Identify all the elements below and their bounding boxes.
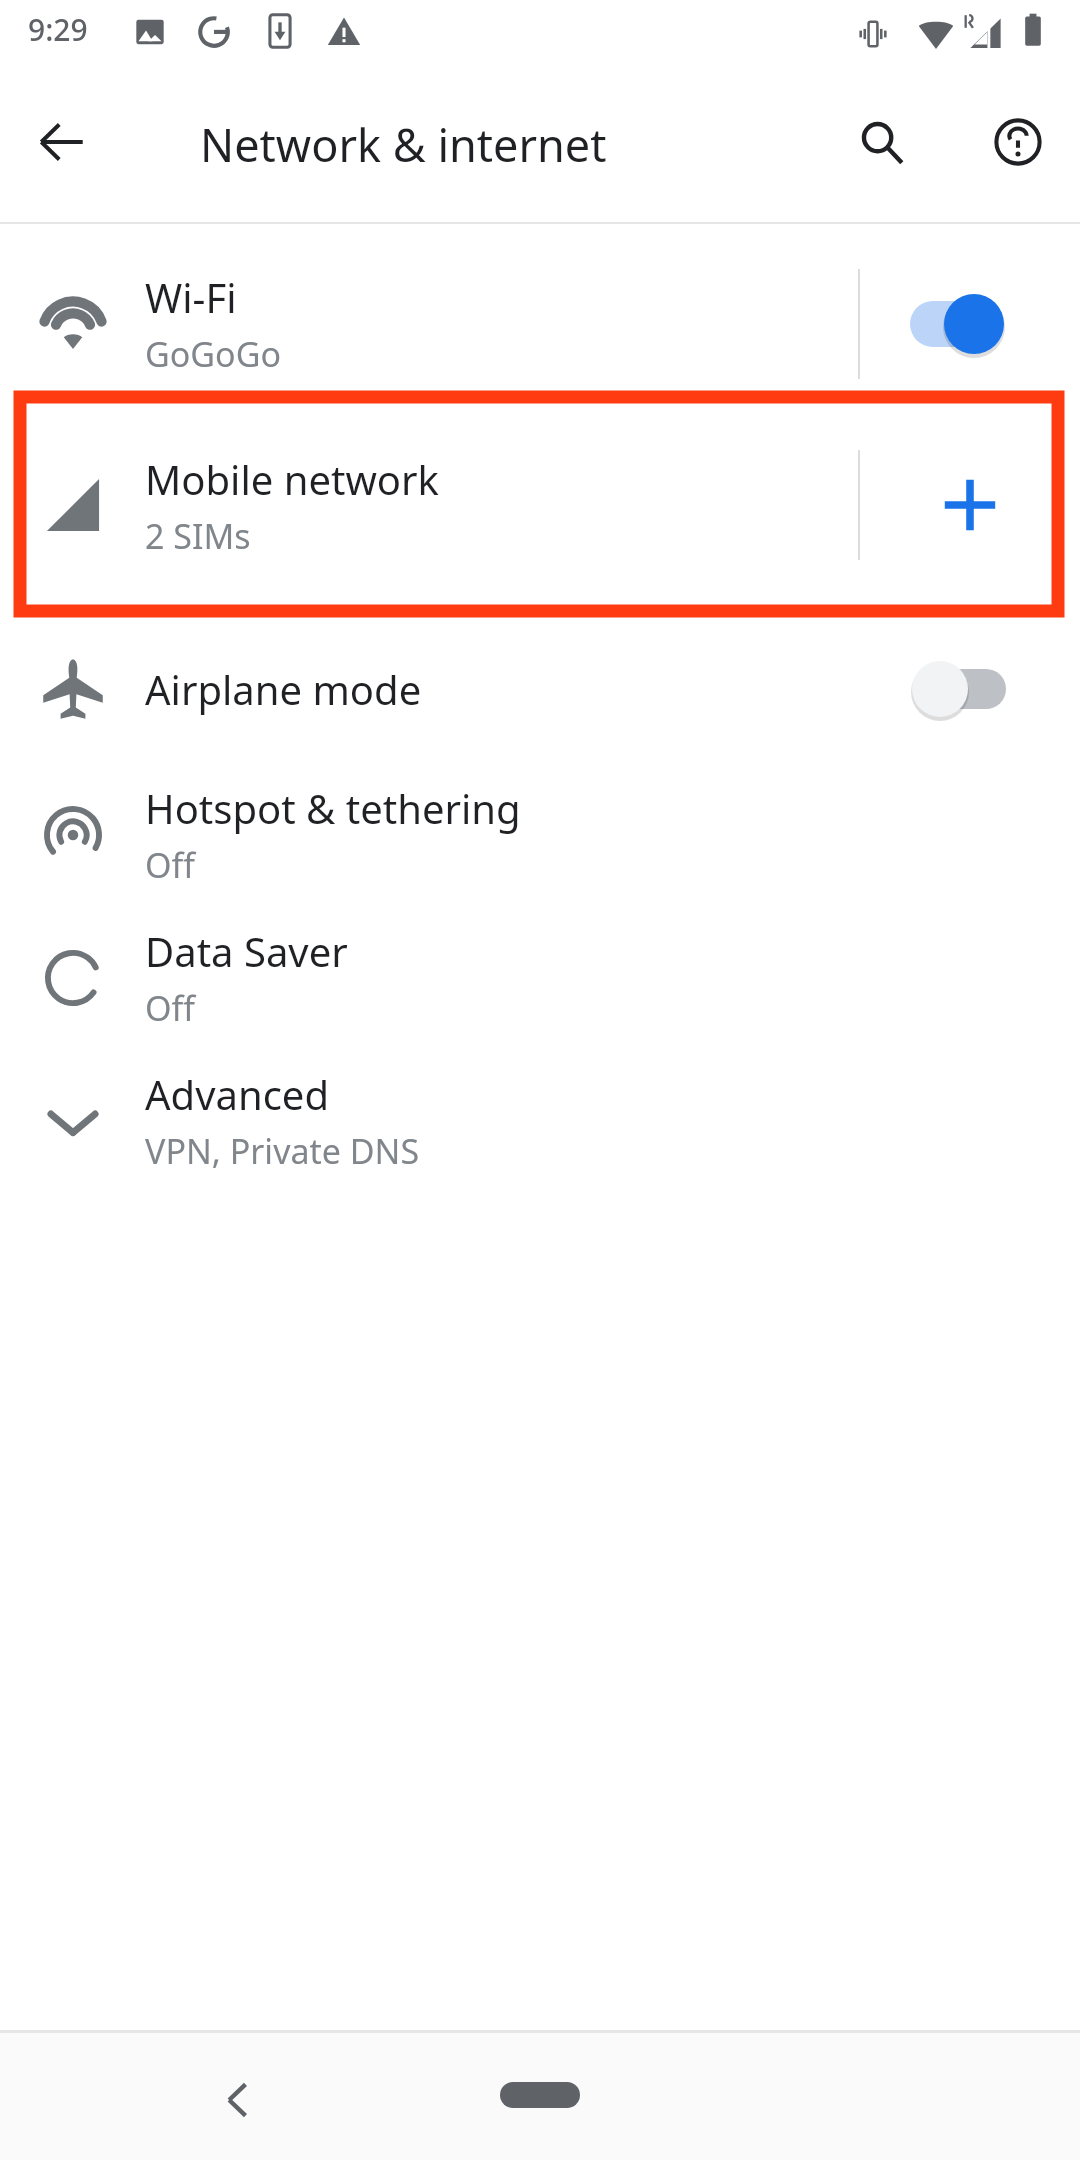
button[interactable]: Wi-Fi — [0, 252, 1080, 395]
staticText: 9:29 — [28, 9, 88, 50]
staticText: Wi-Fi — [145, 270, 237, 324]
staticText: Network & internet — [200, 114, 607, 175]
staticText: Airplane mode — [145, 662, 422, 716]
staticText: Mobile network — [145, 452, 439, 506]
button[interactable]: Search — [842, 102, 922, 182]
staticText: Advanced — [145, 1067, 329, 1121]
staticText: Off — [145, 842, 195, 888]
staticText: Hotspot & tethering — [145, 781, 521, 835]
button[interactable]: Hotspot & tethering — [0, 763, 1080, 906]
button[interactable]: Airplane mode — [0, 615, 1080, 763]
button[interactable]: Add carrier — [915, 450, 1025, 560]
staticText: VPN, Private DNS — [145, 1128, 420, 1174]
button[interactable]: Data Saver — [0, 906, 1080, 1049]
button[interactable]: Advanced — [0, 1049, 1080, 1192]
button[interactable]: Mobile network — [0, 395, 1080, 615]
button[interactable]: Wi-Fi on — [910, 284, 1030, 364]
staticText: GoGoGo — [145, 331, 281, 377]
button[interactable]: Back — [195, 2057, 281, 2143]
staticText: Off — [145, 985, 195, 1031]
button[interactable]: Back — [22, 102, 102, 182]
button[interactable]: Help — [978, 102, 1058, 182]
button[interactable]: Home — [480, 2064, 600, 2126]
staticText: 2 SIMs — [145, 513, 251, 559]
button[interactable]: Airplane mode off — [910, 649, 1030, 729]
staticText: Data Saver — [145, 924, 348, 978]
